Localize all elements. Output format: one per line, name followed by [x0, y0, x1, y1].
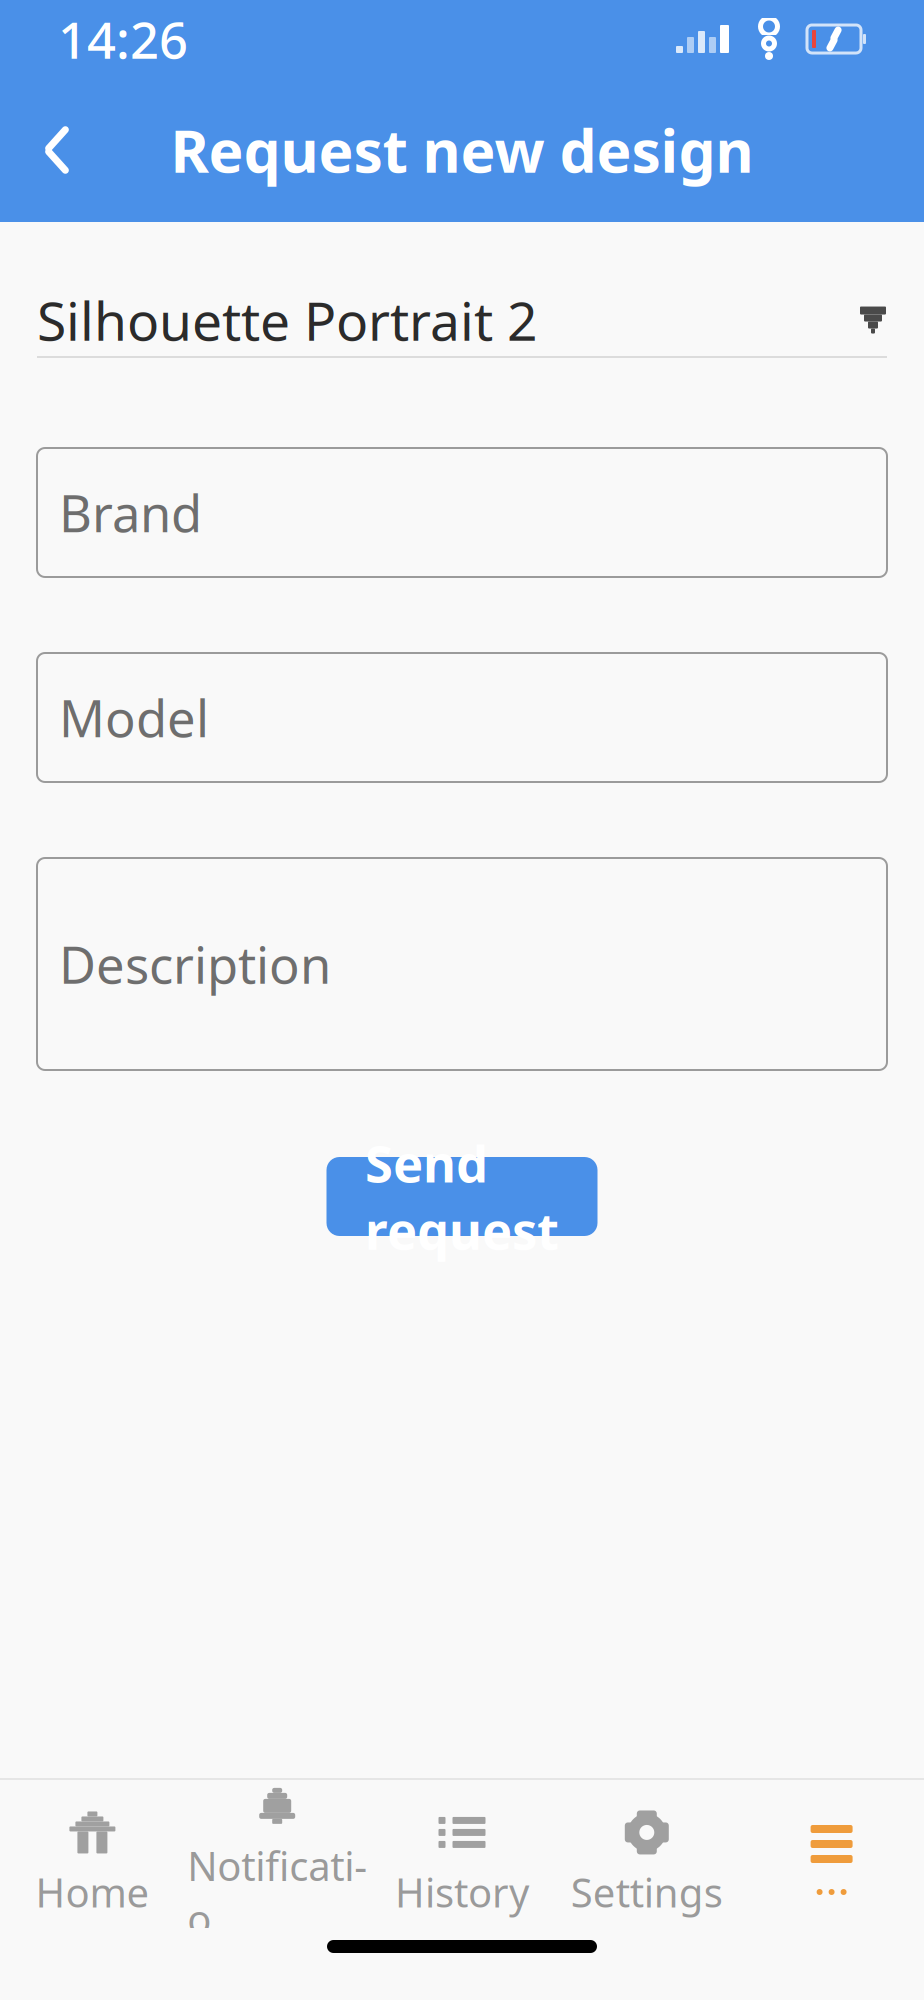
- staticText: Send request: [365, 1129, 559, 1264]
- staticText: Notificatio...: [187, 1839, 367, 1945]
- staticText: Description: [59, 930, 331, 998]
- staticText: Settings: [571, 1865, 723, 1918]
- button[interactable]: Brand: [37, 448, 887, 577]
- staticText: Request new design: [170, 111, 753, 189]
- button[interactable]: Notificatio...: [185, 1800, 370, 1928]
- staticText: Silhouette Portrait 2: [37, 285, 538, 355]
- button[interactable]: History: [370, 1800, 554, 1928]
- staticText: Model: [59, 684, 209, 751]
- button[interactable]: Send request: [326, 1157, 597, 1236]
- staticText: History: [395, 1865, 529, 1918]
- button[interactable]: Home: [0, 1800, 185, 1928]
- staticText: Brand: [59, 479, 202, 546]
- button[interactable]: Silhouette Portrait 2: [37, 284, 887, 358]
- button[interactable]: Description: [37, 858, 887, 1070]
- staticText: 14:26: [58, 5, 188, 73]
- button[interactable]: Back: [14, 107, 100, 193]
- staticText: Home: [35, 1865, 149, 1918]
- button[interactable]: Model: [37, 653, 887, 782]
- button[interactable]: Settings: [554, 1800, 739, 1928]
- button[interactable]: More: [739, 1800, 924, 1928]
